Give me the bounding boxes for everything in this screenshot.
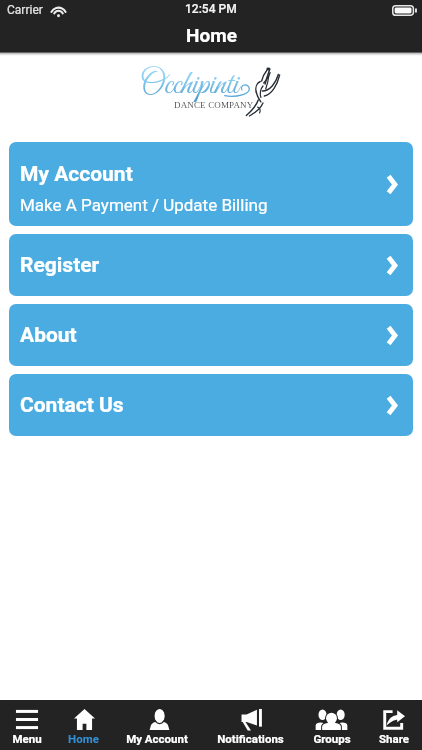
button[interactable]: My Account [112,700,202,750]
staticText: DANCE COMPANY [174,100,254,110]
staticText: Carrier [7,3,43,17]
staticText: My Account [126,732,188,745]
staticText: Home [68,732,99,745]
staticText: Groups [313,732,351,745]
button[interactable]: My Account [9,142,413,226]
button[interactable]: Groups [298,700,365,750]
button[interactable]: Home [54,700,112,750]
button[interactable]: About [9,304,413,366]
staticText: Make A Payment / Update Billing [20,195,268,215]
staticText: Register [20,253,100,278]
staticText: Menu [12,732,42,745]
staticText: Notifications [217,732,284,745]
staticText: 12:54 PM [185,2,237,16]
staticText: Occhipinti [140,65,239,106]
staticText: About [20,323,77,348]
staticText: Share [379,732,409,745]
button[interactable]: Notifications [202,700,298,750]
staticText: Home [186,24,237,46]
button[interactable]: Share [365,700,422,750]
button[interactable]: Menu [0,700,54,750]
button[interactable]: Contact Us [9,374,413,436]
staticText: My Account [20,162,133,187]
staticText: Contact Us [20,393,124,418]
button[interactable]: Register [9,234,413,296]
